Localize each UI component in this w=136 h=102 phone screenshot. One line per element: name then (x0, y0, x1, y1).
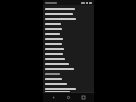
button[interactable]: Back (49, 93, 58, 102)
button[interactable] (43, 81, 94, 86)
button[interactable] (43, 56, 94, 61)
button[interactable] (43, 26, 94, 31)
button[interactable] (43, 21, 94, 26)
button[interactable] (43, 76, 94, 81)
button[interactable]: Recents (79, 93, 88, 102)
button[interactable] (43, 41, 94, 46)
button[interactable] (43, 46, 94, 51)
button[interactable] (43, 6, 94, 11)
button[interactable] (43, 71, 94, 76)
button[interactable] (43, 61, 94, 66)
button[interactable] (43, 91, 94, 92)
button[interactable] (43, 11, 94, 16)
button[interactable] (43, 86, 94, 91)
button[interactable] (43, 31, 94, 36)
button[interactable]: Home (64, 93, 73, 102)
button[interactable] (43, 16, 94, 21)
button[interactable] (43, 51, 94, 56)
button[interactable] (43, 66, 94, 71)
button[interactable] (43, 36, 94, 41)
